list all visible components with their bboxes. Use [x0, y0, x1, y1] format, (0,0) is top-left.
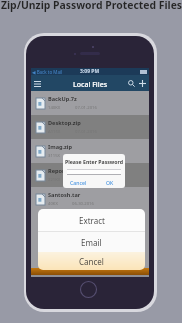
staticText: 40KX: [48, 201, 58, 207]
button[interactable]: Imag.zip: [31, 139, 149, 163]
staticText: Desktop.zip: [48, 119, 81, 127]
staticText: 3:09 PM: [80, 68, 100, 75]
button[interactable]: Add: [137, 78, 148, 89]
button[interactable]: OK: [94, 177, 125, 188]
button[interactable]: Email: [38, 232, 145, 252]
staticText: Email: [81, 237, 102, 248]
staticText: 3115X: [48, 153, 61, 159]
staticText: Extract: [79, 215, 105, 226]
staticText: BackUp.7z: [48, 95, 77, 103]
staticText: Report.zip: [48, 167, 77, 175]
staticText: Zip/Unzip Password Protected Files: [1, 0, 182, 12]
staticText: Cancel: [70, 179, 87, 186]
button[interactable]: Desktop.zip: [31, 115, 149, 139]
staticText: OK: [106, 179, 114, 186]
staticText: 140KX: [48, 105, 61, 111]
staticText: 07-01-2016: [75, 153, 97, 159]
button[interactable]: Santosh.tar: [31, 187, 149, 211]
staticText: Please Enter Password: [65, 158, 124, 165]
button[interactable]: Search: [126, 78, 137, 89]
staticText: 07-01-2016: [75, 105, 97, 111]
staticText: 07-01-2016: [75, 177, 97, 183]
staticText: Santosh.tar: [48, 191, 81, 199]
staticText: Imag.zip: [48, 143, 73, 151]
staticText: ◀ Back to Mail: [32, 69, 63, 75]
button[interactable]: Extract: [38, 209, 145, 231]
staticText: Local Files: [73, 80, 108, 90]
button[interactable]: Report.zip: [31, 163, 149, 187]
button[interactable]: Menu: [32, 78, 43, 89]
button[interactable]: Cancel: [38, 252, 145, 270]
button[interactable]: Cancel: [63, 177, 94, 188]
button[interactable]: BackUp.7z: [31, 91, 149, 115]
staticText: 06-30-2016: [72, 201, 94, 207]
staticText: Cancel: [79, 256, 104, 267]
button[interactable]: [67, 169, 121, 175]
